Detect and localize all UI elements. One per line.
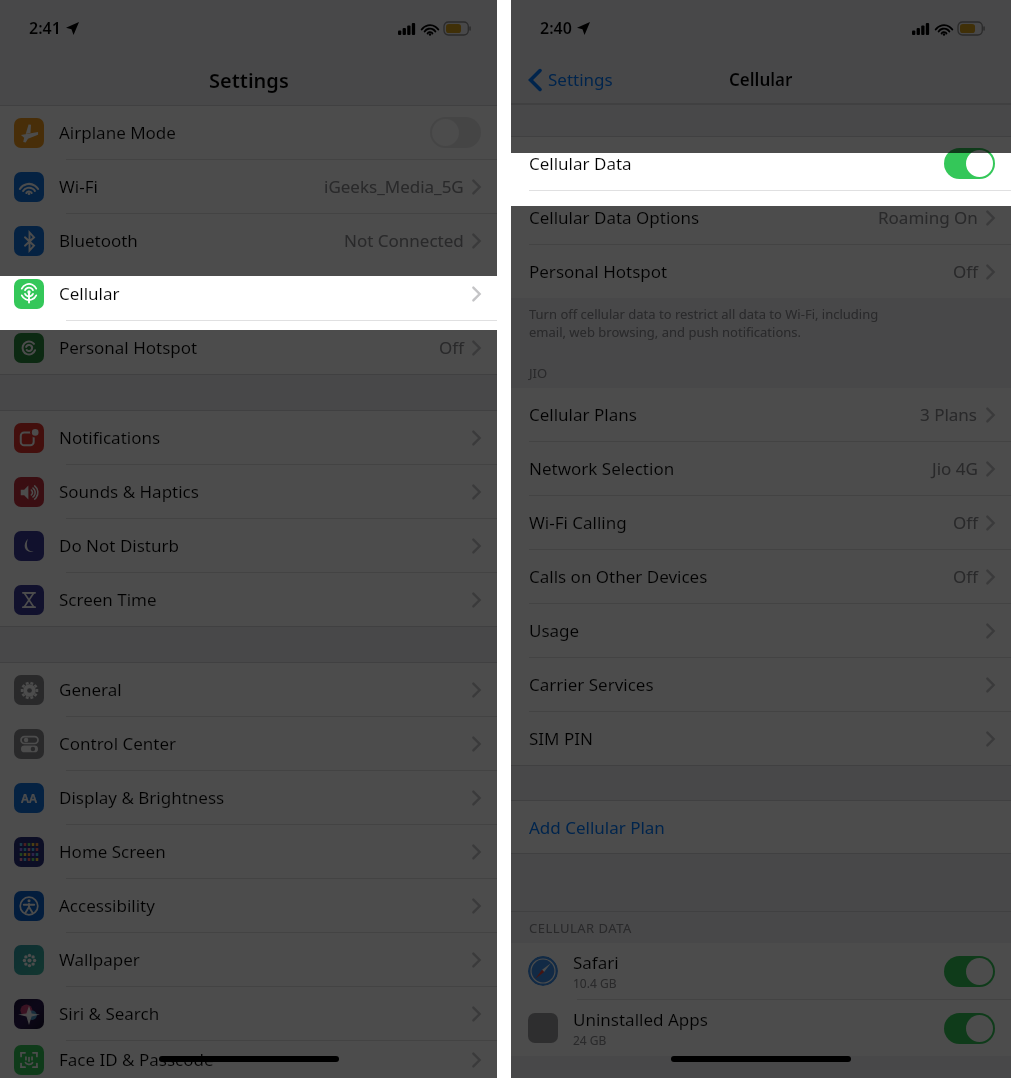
- staticText: SIM PIN: [529, 727, 986, 750]
- staticText: Cellular Data: [529, 152, 944, 175]
- staticText: Off: [953, 511, 978, 534]
- button[interactable]: Control Center: [0, 717, 497, 770]
- staticText: Off: [953, 565, 978, 588]
- staticText: Display & Brightness: [59, 786, 472, 809]
- staticText: Wi-Fi Calling: [529, 511, 953, 534]
- button[interactable]: Settings: [529, 68, 613, 91]
- staticText: Airplane Mode: [59, 121, 430, 144]
- button[interactable]: Network Selection: [511, 442, 1011, 495]
- staticText: Calls on Other Devices: [529, 565, 953, 588]
- button[interactable]: Safari: [511, 943, 1011, 999]
- staticText: email, web browsing, and push notificati…: [529, 323, 802, 341]
- staticText: Roaming On: [878, 206, 978, 229]
- button[interactable]: On: [944, 148, 995, 179]
- staticText: Accessibility: [59, 894, 472, 917]
- button[interactable]: Airplane Mode: [0, 106, 497, 159]
- button[interactable]: Bluetooth: [0, 214, 497, 267]
- staticText: Screen Time: [59, 588, 472, 611]
- staticText: Sounds & Haptics: [59, 480, 472, 503]
- button[interactable]: Wi-Fi: [0, 160, 497, 213]
- button[interactable]: Cellular: [0, 267, 497, 320]
- staticText: Notifications: [59, 426, 472, 449]
- staticText: AA: [21, 790, 38, 806]
- button[interactable]: Wallpaper: [0, 933, 497, 986]
- staticText: Cellular Data Options: [529, 206, 878, 229]
- staticText: 3 Plans: [920, 403, 978, 426]
- button[interactable]: Wi-Fi Calling: [511, 496, 1011, 549]
- button[interactable]: Face ID & Passcode: [0, 1041, 497, 1078]
- staticText: CELLULAR DATA: [529, 919, 632, 937]
- staticText: Bluetooth: [59, 229, 344, 252]
- staticText: Settings: [548, 68, 613, 91]
- staticText: Home Screen: [59, 840, 472, 863]
- staticText: Face ID & Passcode: [59, 1048, 472, 1071]
- button[interactable]: AA: [0, 771, 497, 824]
- button[interactable]: Calls on Other Devices: [511, 550, 1011, 603]
- button[interactable]: Do Not Disturb: [0, 519, 497, 572]
- staticText: Cellular Plans: [529, 403, 920, 426]
- button[interactable]: Sounds & Haptics: [0, 465, 497, 518]
- staticText: Control Center: [59, 732, 472, 755]
- staticText: Do Not Disturb: [59, 534, 472, 557]
- staticText: Turn off cellular data to restrict all d…: [529, 305, 879, 323]
- staticText: General: [59, 678, 472, 701]
- button[interactable]: General: [0, 663, 497, 716]
- staticText: Uninstalled Apps: [573, 1008, 708, 1031]
- staticText: 2:40: [540, 17, 572, 39]
- staticText: Personal Hotspot: [529, 260, 953, 283]
- staticText: Network Selection: [529, 457, 932, 480]
- staticText: Not Connected: [344, 229, 464, 252]
- button[interactable]: Personal Hotspot: [511, 245, 1011, 298]
- staticText: Personal Hotspot: [59, 336, 439, 359]
- staticText: Siri & Search: [59, 1002, 472, 1025]
- staticText: Off: [439, 336, 464, 359]
- staticText: Cellular: [59, 282, 472, 305]
- staticText: Usage: [529, 619, 986, 642]
- staticText: 10.4 GB: [573, 975, 617, 991]
- button[interactable]: Usage: [511, 604, 1011, 657]
- staticText: Add Cellular Plan: [529, 816, 665, 839]
- button[interactable]: Siri & Search: [0, 987, 497, 1040]
- staticText: 24 GB: [573, 1032, 607, 1048]
- button[interactable]: On: [944, 956, 995, 987]
- button[interactable]: On: [944, 1013, 995, 1044]
- staticText: Jio 4G: [932, 457, 978, 480]
- button[interactable]: SIM PIN: [511, 712, 1011, 765]
- staticText: iGeeks_Media_5G: [324, 175, 464, 198]
- staticText: Settings: [209, 67, 289, 94]
- staticText: Cellular: [729, 68, 793, 91]
- staticText: 2:41: [29, 17, 61, 39]
- button[interactable]: Carrier Services: [511, 658, 1011, 711]
- staticText: Wi-Fi: [59, 175, 324, 198]
- staticText: Wallpaper: [59, 948, 472, 971]
- button[interactable]: Cellular Data Options: [511, 191, 1011, 244]
- staticText: Off: [953, 260, 978, 283]
- staticText: JIO: [529, 364, 548, 382]
- button[interactable]: Personal Hotspot: [0, 321, 497, 374]
- button[interactable]: Cellular Plans: [511, 388, 1011, 441]
- button[interactable]: Home Screen: [0, 825, 497, 878]
- button[interactable]: Accessibility: [0, 879, 497, 932]
- button[interactable]: Off: [430, 117, 481, 148]
- button[interactable]: Screen Time: [0, 573, 497, 626]
- staticText: Carrier Services: [529, 673, 986, 696]
- button[interactable]: Uninstalled Apps: [511, 1000, 1011, 1056]
- staticText: Safari: [573, 951, 619, 974]
- button[interactable]: Notifications: [0, 411, 497, 464]
- button[interactable]: Add Cellular Plan: [511, 801, 1011, 853]
- button[interactable]: Cellular Data: [511, 137, 1011, 190]
